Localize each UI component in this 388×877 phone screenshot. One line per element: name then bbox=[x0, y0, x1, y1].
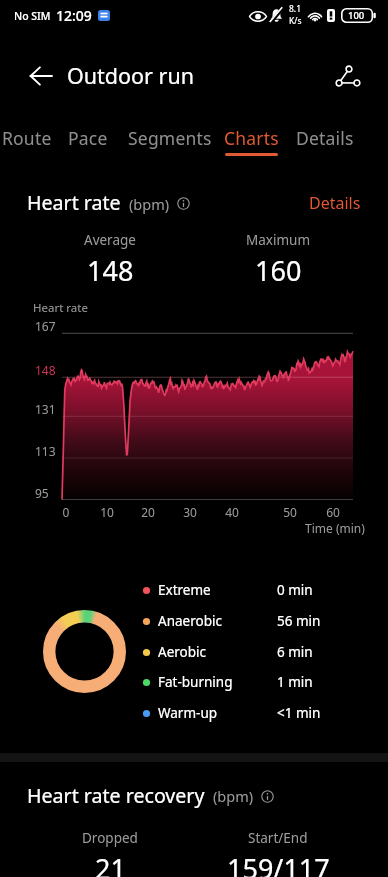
staticText: 20 bbox=[133, 504, 163, 520]
staticText: Outdoor run bbox=[67, 61, 195, 90]
button[interactable]: Anaerobic bbox=[142, 606, 357, 636]
staticText: No SIM bbox=[14, 9, 51, 23]
staticText: Pace bbox=[68, 126, 108, 150]
button[interactable]: Details bbox=[289, 126, 361, 160]
staticText: 95 bbox=[35, 485, 75, 501]
staticText: Heart rate bbox=[27, 189, 121, 216]
staticText: 113 bbox=[35, 443, 75, 459]
staticText: (bpm) bbox=[129, 194, 170, 214]
staticText: Time (min) bbox=[305, 520, 365, 536]
staticText: 56 min bbox=[277, 612, 321, 630]
staticText: Warm-up bbox=[158, 704, 218, 722]
staticText: 0 bbox=[51, 504, 81, 520]
staticText: 148 bbox=[87, 252, 134, 286]
button[interactable]: Back bbox=[20, 55, 62, 97]
button[interactable]: Extreme bbox=[142, 575, 357, 605]
button[interactable]: Route bbox=[0, 126, 60, 160]
staticText: Heart rate recovery bbox=[27, 782, 205, 809]
staticText: K/s bbox=[289, 15, 302, 27]
staticText: 159/117 bbox=[227, 850, 330, 877]
staticText: Aerobic bbox=[158, 643, 206, 661]
button[interactable]: Charts bbox=[217, 126, 286, 160]
staticText: Dropped bbox=[82, 829, 138, 847]
staticText: 148 bbox=[35, 362, 75, 378]
staticText: Details bbox=[296, 126, 354, 150]
button[interactable]: Share bbox=[327, 55, 369, 97]
staticText: 8.1 bbox=[289, 3, 302, 15]
staticText: 0 min bbox=[277, 581, 313, 599]
staticText: Details bbox=[309, 192, 361, 214]
staticText: 1 min bbox=[277, 673, 313, 691]
staticText: 6 min bbox=[277, 643, 313, 661]
staticText: 12:09 bbox=[56, 6, 92, 25]
staticText: Segments bbox=[128, 126, 212, 150]
staticText: (bpm) bbox=[213, 786, 254, 806]
staticText: Maximum bbox=[246, 231, 311, 249]
button[interactable]: Fat-burning bbox=[142, 667, 357, 697]
staticText: 30 bbox=[175, 504, 205, 520]
staticText: Start/End bbox=[248, 829, 308, 847]
staticText: Heart rate bbox=[33, 300, 88, 316]
staticText: <1 min bbox=[277, 704, 321, 722]
staticText: Anaerobic bbox=[158, 612, 222, 630]
staticText: 160 bbox=[255, 252, 302, 286]
staticText: 60 bbox=[318, 504, 348, 520]
staticText: 50 bbox=[275, 504, 305, 520]
staticText: 10 bbox=[92, 504, 122, 520]
staticText: Route bbox=[2, 126, 52, 150]
staticText: Average bbox=[84, 231, 136, 249]
button[interactable]: Segments bbox=[120, 126, 220, 160]
staticText: Charts bbox=[224, 126, 279, 150]
staticText: 40 bbox=[217, 504, 247, 520]
button[interactable]: Warm-up bbox=[142, 698, 357, 728]
staticText: 131 bbox=[35, 401, 75, 417]
staticText: 100 bbox=[348, 9, 365, 22]
staticText: Fat-burning bbox=[158, 673, 233, 691]
button[interactable]: Pace bbox=[59, 126, 117, 160]
staticText: 21 bbox=[95, 850, 126, 877]
button[interactable]: Details bbox=[309, 192, 361, 214]
button[interactable]: Aerobic bbox=[142, 637, 357, 667]
staticText: Extreme bbox=[158, 581, 211, 599]
staticText: 167 bbox=[35, 318, 75, 334]
